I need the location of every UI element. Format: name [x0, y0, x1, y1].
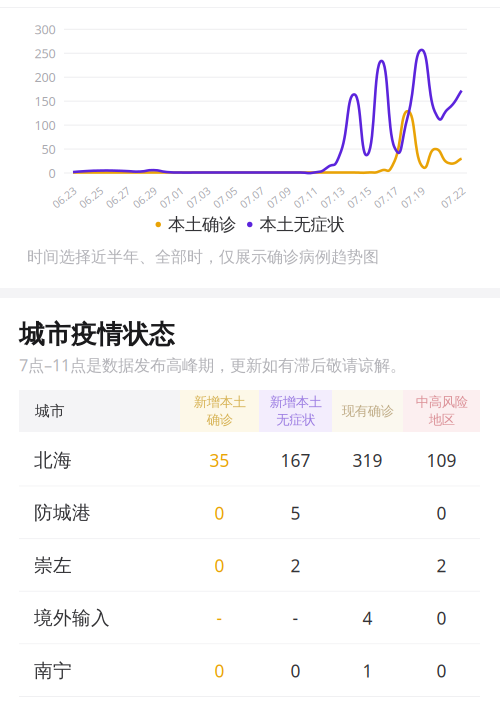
staticText: 07.01: [155, 182, 182, 196]
staticText: 0: [290, 659, 300, 682]
staticText: 109: [426, 448, 456, 472]
staticText: 北海: [34, 448, 72, 472]
staticText: 150: [35, 92, 56, 110]
staticText: 新增本土 无症状: [269, 394, 321, 428]
staticText: 07.22: [437, 182, 464, 196]
staticText: 0: [214, 554, 224, 577]
staticText: 中高风险 地区: [415, 394, 467, 428]
staticText: 南宁: [34, 659, 72, 682]
staticText: 城市疫情状态: [19, 318, 175, 351]
staticText: 0: [214, 659, 224, 682]
staticText: 06.27: [102, 182, 129, 196]
staticText: 1: [362, 659, 372, 682]
staticText: 300: [35, 21, 56, 38]
staticText: 0: [49, 164, 56, 182]
staticText: 现有确诊: [341, 403, 393, 419]
staticText: 100: [35, 116, 56, 134]
staticText: 0: [436, 501, 446, 525]
button[interactable]: 境外输入: [19, 592, 480, 644]
staticText: 319: [352, 448, 382, 472]
staticText: 0: [436, 659, 446, 682]
button[interactable]: 南宁: [19, 644, 480, 697]
staticText: 50: [42, 140, 56, 158]
staticText: 本土确诊: [168, 214, 236, 235]
staticText: 5: [290, 501, 300, 525]
staticText: 2: [436, 554, 446, 577]
staticText: 07.17: [370, 182, 397, 196]
staticText: 07.09: [262, 182, 289, 196]
staticText: 城市: [35, 402, 65, 420]
button[interactable]: 崇左: [19, 539, 480, 592]
staticText: 崇左: [34, 554, 72, 577]
staticText: 167: [280, 448, 310, 472]
staticText: 新增本土 确诊: [193, 394, 245, 428]
staticText: 06.25: [75, 182, 102, 196]
staticText: 2: [290, 554, 300, 577]
staticText: 250: [35, 45, 56, 62]
staticText: 200: [35, 69, 56, 86]
staticText: 07.19: [396, 182, 423, 196]
staticText: 0: [436, 606, 446, 630]
staticText: 07.11: [289, 182, 316, 196]
staticText: 35: [209, 448, 229, 472]
staticText: 7点–11点是数据发布高峰期，更新如有滞后敬请谅解。: [19, 354, 406, 376]
staticText: 境外输入: [34, 606, 110, 630]
staticText: 07.13: [316, 182, 343, 196]
button[interactable]: 北海: [19, 434, 480, 487]
staticText: 时间选择近半年、全部时，仅展示确诊病例趋势图: [27, 247, 379, 267]
staticText: 本土无症状: [259, 214, 344, 235]
staticText: 0: [214, 501, 224, 525]
staticText: 07.15: [343, 182, 370, 196]
staticText: 防城港: [34, 501, 91, 525]
staticText: 07.05: [209, 182, 236, 196]
staticText: 06.23: [48, 182, 75, 196]
staticText: -: [292, 606, 298, 630]
staticText: 07.07: [236, 182, 263, 196]
staticText: 4: [362, 606, 372, 630]
staticText: 07.03: [182, 182, 209, 196]
button[interactable]: 防城港: [19, 487, 480, 539]
staticText: -: [216, 606, 222, 630]
staticText: 06.29: [128, 182, 155, 196]
